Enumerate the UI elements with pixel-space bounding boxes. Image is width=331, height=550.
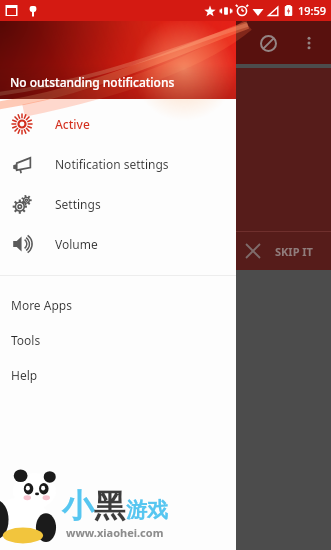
- staticText: Set the maximum number of: [18, 133, 167, 148]
- button[interactable]: Snooze: [205, 26, 239, 60]
- button[interactable]: Help: [0, 357, 236, 392]
- button[interactable]: SKIP IT: [233, 243, 325, 259]
- button[interactable]: More Apps: [0, 287, 236, 322]
- staticText: SKIP IT: [275, 244, 313, 259]
- staticText: 小: [62, 486, 94, 526]
- staticText: 游戏: [126, 497, 168, 523]
- staticText: z: [225, 36, 228, 43]
- staticText: Volume: [55, 236, 98, 252]
- staticText: Help: [11, 367, 38, 383]
- button[interactable]: Tools: [0, 322, 236, 357]
- staticText: Notification settings: [55, 156, 169, 172]
- staticText: More Apps: [11, 297, 72, 313]
- staticText: www.xiaohei.com: [66, 525, 164, 540]
- button[interactable]: More options: [293, 27, 325, 59]
- button[interactable]: Block: [251, 26, 285, 60]
- staticText: Settings: [55, 196, 101, 212]
- staticText: z: [220, 37, 224, 47]
- button[interactable]: Volume: [0, 224, 236, 264]
- button[interactable]: Active: [0, 104, 236, 144]
- button[interactable]: Settings: [0, 184, 236, 224]
- staticText: Active: [55, 116, 90, 132]
- staticText: z: [216, 39, 221, 51]
- staticText: 19:59: [298, 3, 327, 18]
- staticText: notifications "Flow" in the: [18, 155, 151, 170]
- button[interactable]: Notification settings: [0, 144, 236, 184]
- staticText: No outstanding notifications: [10, 74, 175, 90]
- staticText: Tools: [11, 332, 41, 348]
- staticText: 黑: [94, 486, 126, 526]
